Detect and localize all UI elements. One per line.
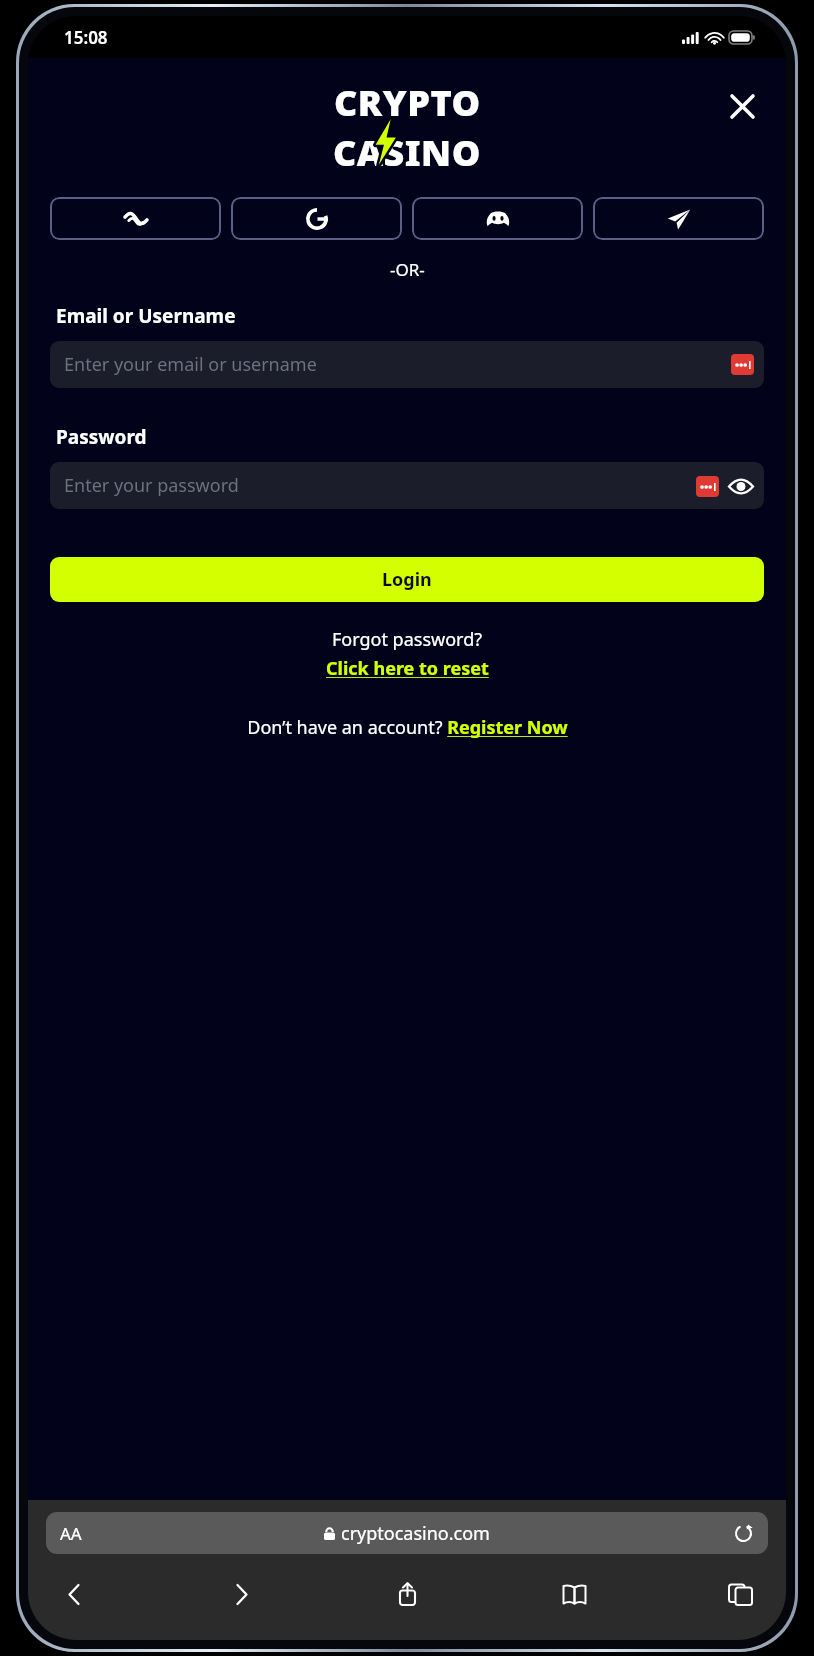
staticText: Login bbox=[382, 567, 432, 592]
button[interactable]: Show password bbox=[728, 473, 754, 499]
staticText: -OR- bbox=[390, 258, 425, 281]
button[interactable]: Don’t have an account? Register Now bbox=[50, 715, 764, 740]
button[interactable]: Close bbox=[720, 84, 764, 128]
button[interactable]: Autofill password bbox=[731, 354, 754, 375]
staticText: Don’t have an account? Register Now bbox=[247, 715, 568, 740]
staticText: cryptocasino.com bbox=[341, 1521, 490, 1546]
button[interactable]: Tabs bbox=[714, 1568, 766, 1620]
button[interactable]: Forward bbox=[215, 1568, 267, 1620]
button[interactable]: Discord bbox=[412, 197, 583, 240]
button[interactable]: Share bbox=[381, 1568, 433, 1620]
button[interactable]: Login bbox=[50, 557, 764, 602]
button[interactable]: Autofill password bbox=[696, 476, 719, 497]
button[interactable]: Telegram bbox=[593, 197, 764, 240]
staticText: Enter your email or username bbox=[64, 352, 317, 377]
button[interactable]: Back bbox=[48, 1568, 100, 1620]
button[interactable]: Enter your password bbox=[50, 462, 764, 509]
button[interactable]: Google bbox=[231, 197, 402, 240]
staticText: 15:08 bbox=[64, 26, 108, 49]
button[interactable]: Click here to reset bbox=[326, 656, 489, 681]
staticText: AA bbox=[60, 1522, 82, 1545]
staticText: Email or Username bbox=[56, 303, 236, 329]
staticText: CRYPTO bbox=[334, 78, 481, 127]
button[interactable]: Reload bbox=[730, 1520, 756, 1546]
button[interactable]: Bookmarks bbox=[548, 1568, 600, 1620]
staticText: Password bbox=[56, 424, 147, 450]
staticText: Enter your password bbox=[64, 473, 239, 498]
staticText: Forgot password? bbox=[332, 627, 483, 652]
button[interactable]: WalletConnect bbox=[50, 197, 221, 240]
button[interactable]: AA bbox=[46, 1512, 768, 1554]
button[interactable]: Enter your email or username bbox=[50, 341, 764, 388]
staticText: CASINO bbox=[333, 128, 481, 177]
staticText: Click here to reset bbox=[326, 656, 489, 681]
